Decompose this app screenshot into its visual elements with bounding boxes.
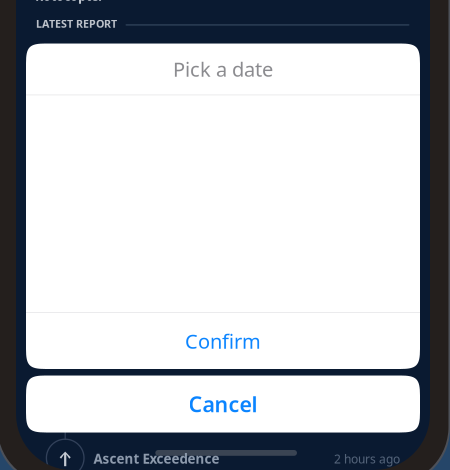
button[interactable]: Confirm [26, 313, 420, 369]
staticText: LATEST REPORT [36, 17, 117, 31]
staticText: Pick a date [173, 56, 273, 82]
staticText: 2 hours ago [334, 451, 400, 467]
staticText: Confirm [185, 328, 261, 354]
button[interactable]: Ascent Exceedence [16, 438, 430, 470]
staticText: Ascent Exceedence [93, 450, 219, 467]
staticText: Cancel [188, 390, 257, 418]
button[interactable]: Cancel [26, 375, 420, 432]
staticText: Rotocopter [35, 0, 103, 4]
